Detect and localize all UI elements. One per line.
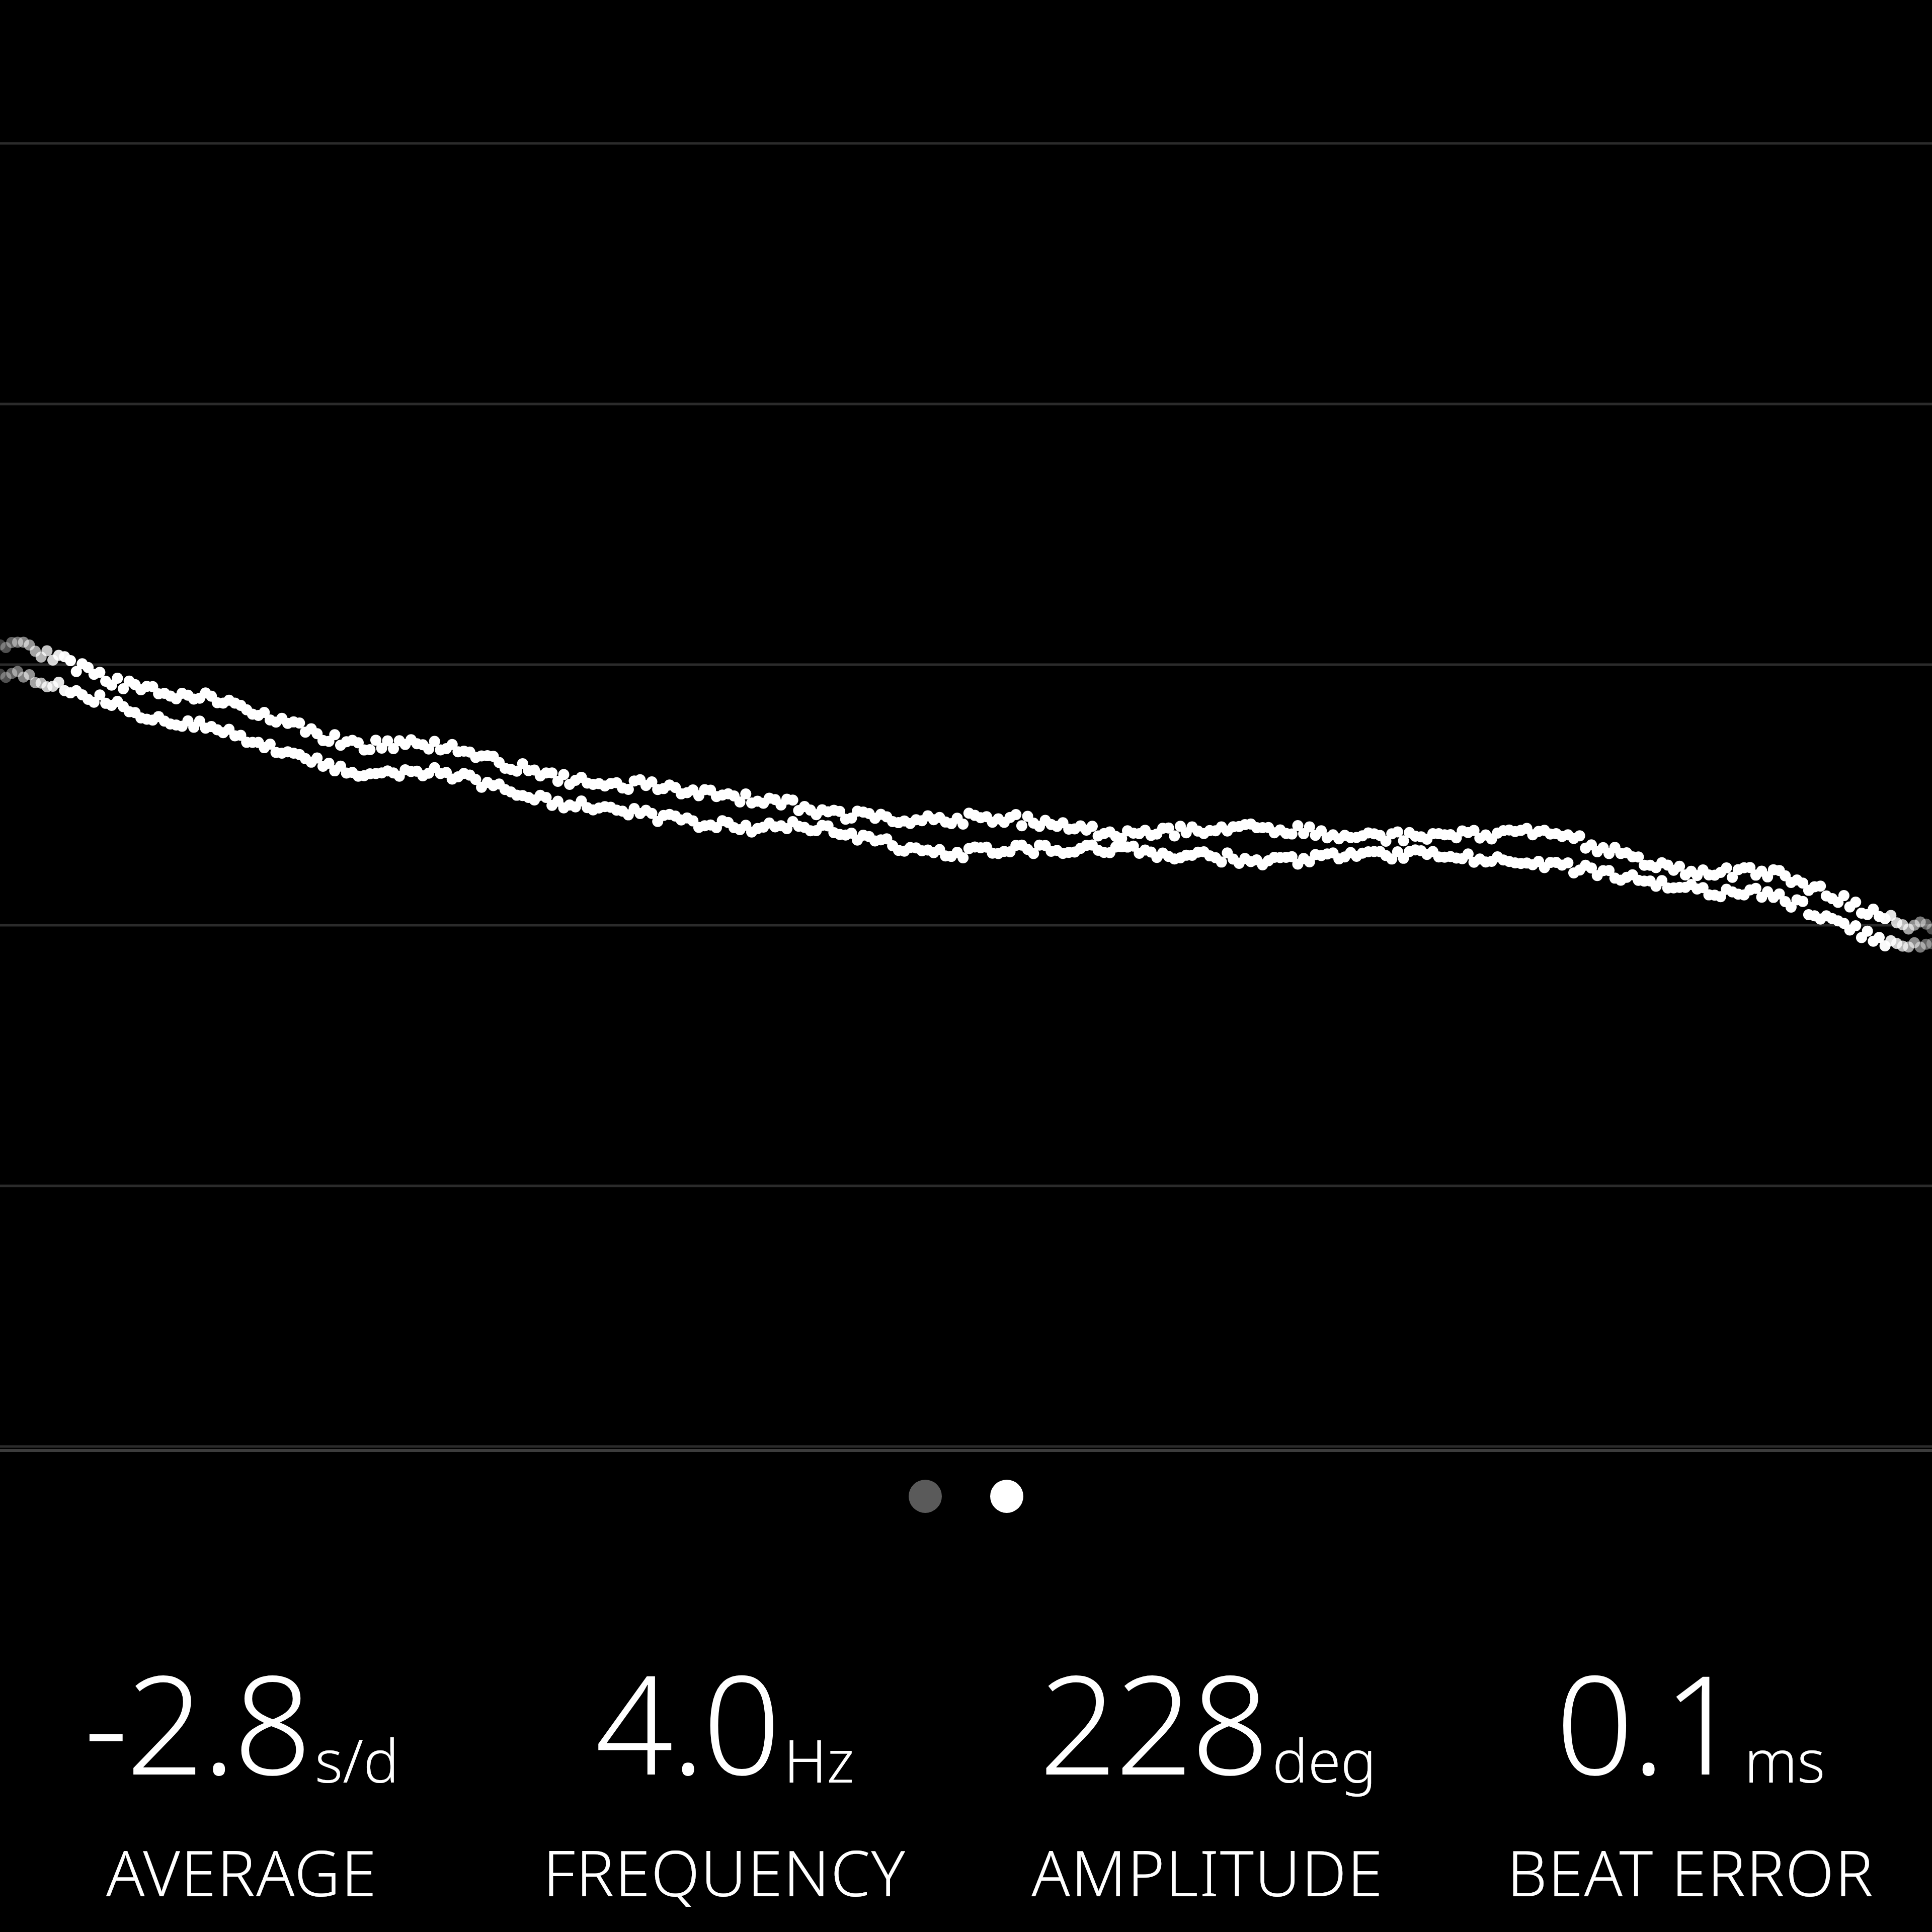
- staticText: 228: [1039, 1628, 1267, 1814]
- button[interactable]: 0.1: [1449, 1628, 1932, 1915]
- staticText: 0.1: [1556, 1628, 1739, 1814]
- staticText: s/d: [315, 1719, 399, 1800]
- button[interactable]: 4.0: [483, 1628, 966, 1915]
- staticText: Hz: [784, 1719, 854, 1800]
- button[interactable]: 228: [966, 1628, 1449, 1915]
- staticText: FREQUENCY: [543, 1828, 906, 1915]
- button[interactable]: -2.8: [0, 1628, 483, 1915]
- staticText: BEAT ERROR: [1507, 1828, 1874, 1915]
- button[interactable]: Page 1: [906, 1477, 944, 1515]
- staticText: -2.8: [84, 1628, 310, 1814]
- staticText: AMPLITUDE: [1031, 1828, 1384, 1915]
- staticText: 4.0: [595, 1628, 779, 1814]
- staticText: deg: [1272, 1719, 1377, 1800]
- staticText: AVERAGE: [106, 1828, 377, 1915]
- staticText: ms: [1744, 1719, 1825, 1800]
- button[interactable]: Page 2, selected: [988, 1477, 1026, 1515]
